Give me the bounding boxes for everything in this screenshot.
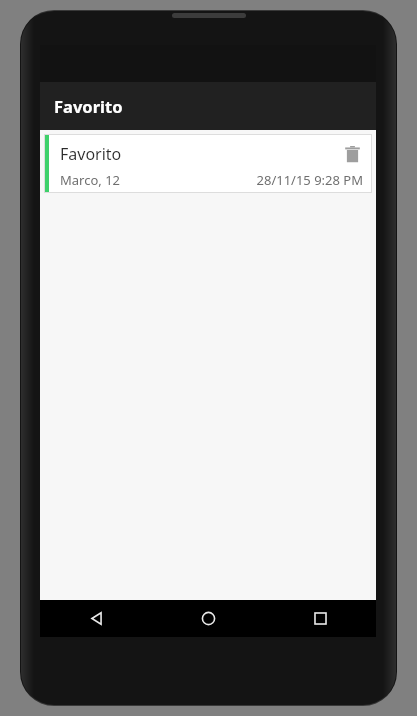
button[interactable]: Back (40, 600, 152, 637)
staticText: Favorito (60, 143, 338, 165)
staticText: Marco, 12 (60, 171, 121, 187)
staticText: 28/11/15 9:28 PM (256, 171, 363, 187)
button[interactable]: Delete (338, 140, 366, 168)
button[interactable]: Recent apps (264, 600, 376, 637)
button[interactable]: Favorito (44, 134, 372, 193)
button[interactable]: Home (152, 600, 264, 637)
staticText: Favorito (54, 95, 123, 117)
